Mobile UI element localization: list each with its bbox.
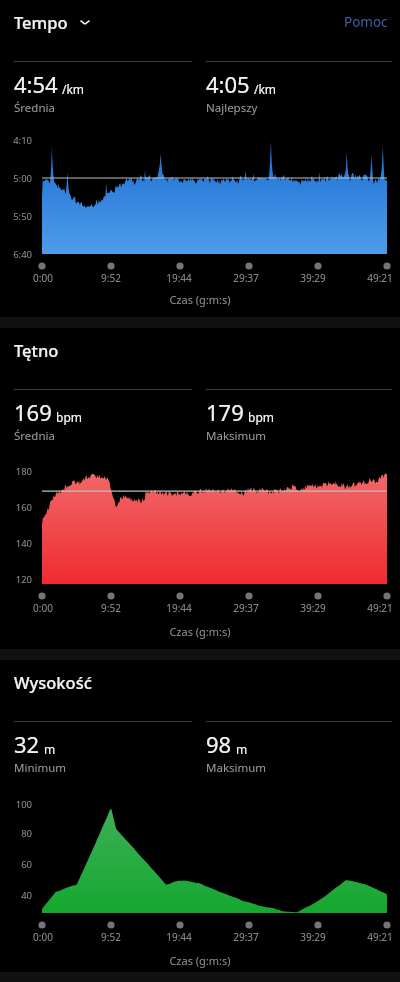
staticText: 19:44 — [162, 271, 196, 285]
staticText: 120 — [0, 573, 32, 586]
staticText: Wysokość — [14, 671, 92, 693]
staticText: 0:00 — [26, 601, 60, 615]
staticText: 6:40 — [0, 248, 32, 261]
staticText: Tempo — [14, 11, 68, 33]
button[interactable]: Tempo — [0, 7, 102, 37]
staticText: 32 — [14, 729, 40, 759]
staticText: 140 — [0, 537, 32, 550]
staticText: Czas (g:m:s) — [0, 624, 400, 639]
staticText: Średnia — [14, 428, 55, 444]
staticText: 19:44 — [162, 930, 196, 944]
staticText: 5:00 — [0, 172, 32, 185]
staticText: 4:54 — [14, 69, 58, 99]
staticText: 0:00 — [26, 930, 60, 944]
staticText: Maksimum — [206, 760, 267, 776]
staticText: 98 — [206, 729, 232, 759]
staticText: 39:29 — [296, 930, 330, 944]
staticText: /km — [62, 81, 85, 97]
staticText: 9:52 — [94, 271, 128, 285]
staticText: 39:29 — [296, 601, 330, 615]
staticText: 39:29 — [296, 271, 330, 285]
staticText: Maksimum — [206, 428, 267, 444]
staticText: 9:52 — [94, 601, 128, 615]
staticText: 9:52 — [94, 930, 128, 944]
staticText: m — [236, 741, 248, 757]
staticText: 29:37 — [229, 930, 263, 944]
staticText: 49:21 — [363, 601, 397, 615]
staticText: 5:50 — [0, 210, 32, 223]
staticText: 49:21 — [363, 271, 397, 285]
staticText: 19:44 — [162, 601, 196, 615]
staticText: 160 — [0, 501, 32, 514]
staticText: bpm — [56, 409, 82, 425]
staticText: 180 — [0, 465, 32, 478]
staticText: 29:37 — [229, 601, 263, 615]
staticText: 179 — [206, 397, 244, 427]
staticText: 4:10 — [0, 134, 32, 147]
staticText: Minimum — [14, 760, 67, 776]
staticText: 169 — [14, 397, 52, 427]
staticText: bpm — [248, 409, 274, 425]
staticText: Czas (g:m:s) — [0, 953, 400, 968]
staticText: /km — [254, 81, 277, 97]
staticText: Tętno — [14, 339, 59, 361]
staticText: 0:00 — [26, 271, 60, 285]
staticText: 40 — [0, 889, 32, 902]
staticText: Pomoc — [344, 13, 388, 31]
staticText: 80 — [0, 827, 32, 840]
button[interactable]: Pomoc — [332, 7, 400, 37]
staticText: m — [44, 741, 56, 757]
staticText: 4:05 — [206, 69, 250, 99]
staticText: 29:37 — [229, 271, 263, 285]
staticText: Średnia — [14, 100, 55, 116]
staticText: 100 — [0, 798, 32, 811]
staticText: 49:21 — [363, 930, 397, 944]
staticText: 60 — [0, 858, 32, 871]
staticText: Czas (g:m:s) — [0, 292, 400, 307]
staticText: Najlepszy — [206, 100, 258, 116]
